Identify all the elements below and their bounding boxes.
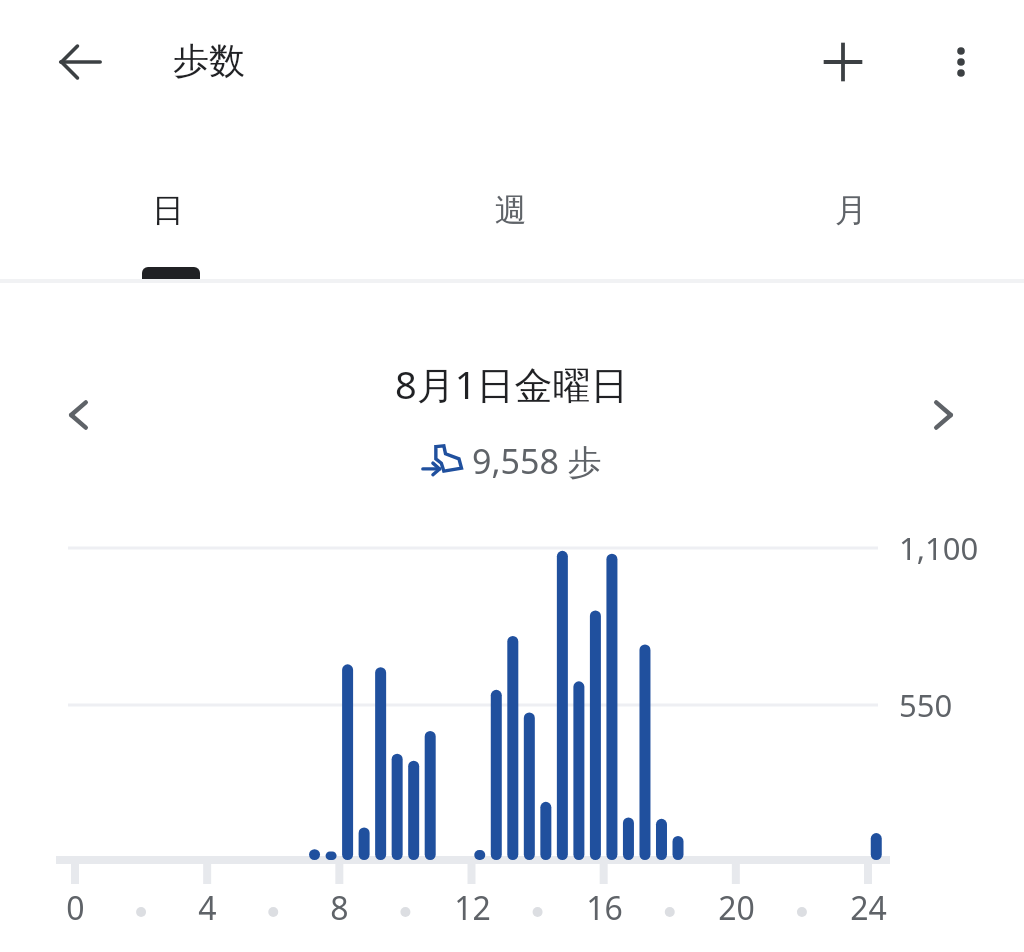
button[interactable]: Add	[807, 26, 879, 98]
staticText: 4	[198, 886, 217, 930]
staticText: 1,100	[899, 527, 979, 569]
staticText: 8	[330, 886, 349, 930]
staticText: 日	[152, 190, 184, 230]
staticText: 月	[835, 190, 867, 230]
button[interactable]: Previous day	[39, 375, 119, 455]
button[interactable]: Back	[44, 26, 116, 98]
staticText: 20	[718, 886, 755, 930]
staticText: 歩数	[173, 38, 245, 83]
staticText: 550	[899, 684, 953, 726]
staticText: 0	[66, 886, 85, 930]
button[interactable]: Next day	[903, 375, 983, 455]
staticText: 週	[495, 190, 527, 230]
button[interactable]: 日	[68, 140, 268, 280]
staticText: 12	[454, 886, 491, 930]
staticText: 24	[850, 886, 887, 930]
staticText: 16	[586, 886, 623, 930]
staticText: 8月1日金曜日	[395, 358, 629, 410]
staticText: 9,558 歩	[472, 438, 602, 484]
button[interactable]: More options	[925, 26, 997, 98]
button[interactable]: 月	[751, 140, 951, 280]
button[interactable]: 週	[411, 140, 611, 280]
